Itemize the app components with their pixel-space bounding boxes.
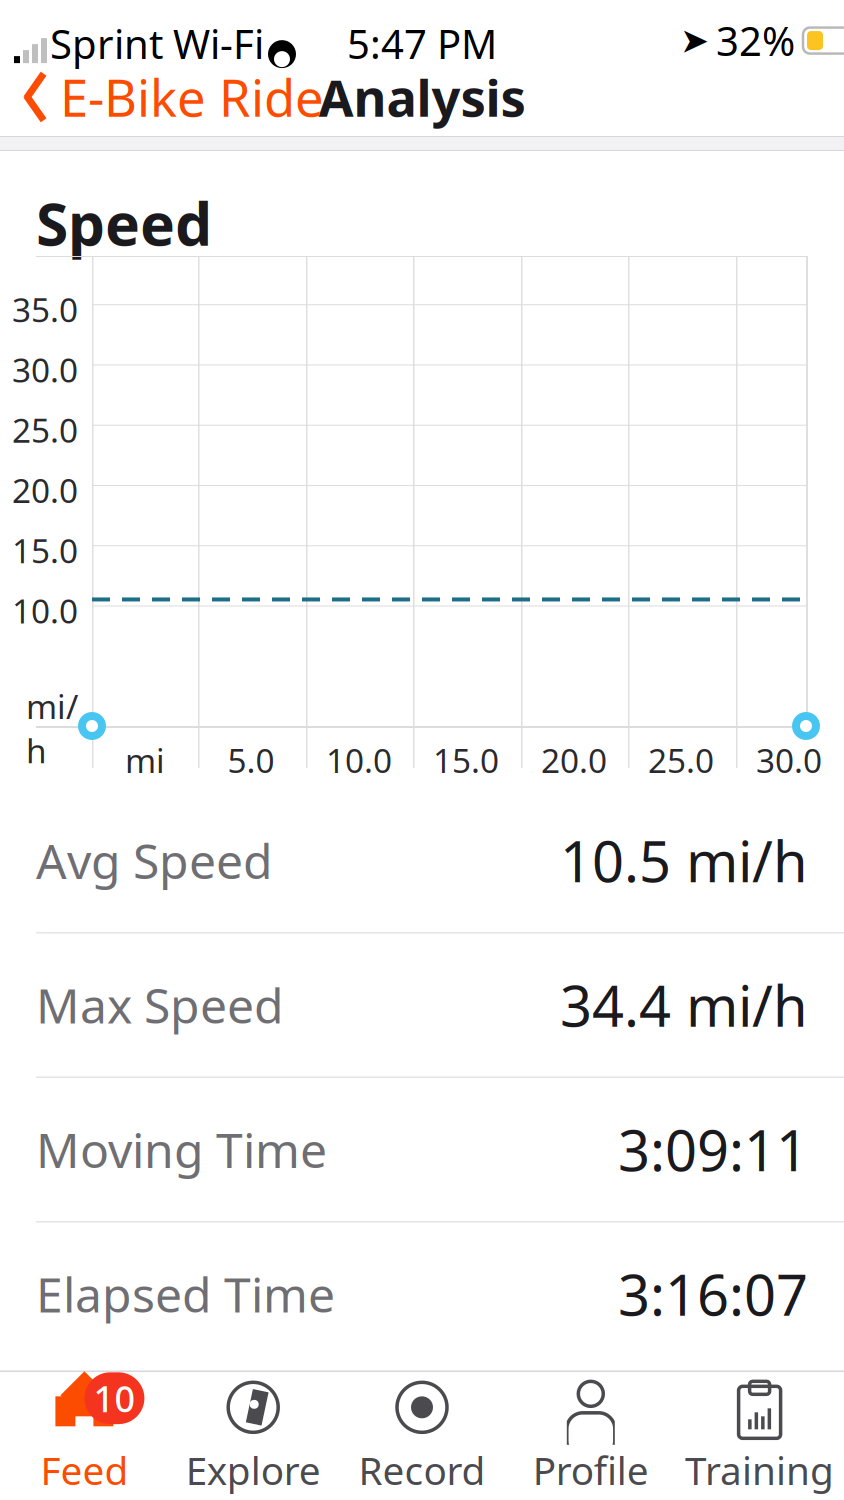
staticText: Elapsed Time	[36, 1262, 335, 1326]
staticText: 10.5 mi/h	[560, 823, 808, 898]
staticText: 10	[93, 1374, 135, 1422]
staticText: Avg Speed	[36, 829, 273, 892]
staticText: ➤	[680, 21, 709, 60]
staticText: E-Bike Ride	[60, 63, 324, 131]
button[interactable]: 10	[0, 1366, 169, 1500]
staticText: 25.0	[648, 738, 714, 782]
staticText: Analysis	[318, 63, 525, 131]
staticText: 15.0	[12, 528, 78, 572]
button[interactable]: E-Bike Ride	[0, 57, 324, 137]
staticText: 20.0	[541, 738, 607, 782]
staticText: mi	[125, 738, 165, 782]
staticText: 3:09:11	[618, 1112, 808, 1187]
staticText: 35.0	[12, 287, 78, 331]
staticText: Profile	[533, 1444, 649, 1496]
staticText: 10.0	[326, 738, 392, 782]
button[interactable]: Moving Time	[0, 1076, 844, 1221]
staticText: Record	[358, 1444, 485, 1496]
staticText: Speed	[36, 184, 212, 262]
button[interactable]: Record	[338, 1366, 506, 1500]
staticText: 5:47 PM	[347, 17, 497, 70]
staticText: mi/h	[26, 684, 78, 772]
staticText: 20.0	[12, 468, 78, 512]
staticText: Sprint Wi-Fi	[50, 17, 264, 70]
staticText: 25.0	[12, 408, 78, 452]
button[interactable]: Avg Speed	[0, 789, 844, 932]
staticText: 30.0	[12, 347, 78, 392]
staticText: Training	[685, 1444, 834, 1496]
staticText: 30.0	[756, 738, 822, 782]
staticText: Feed	[40, 1444, 128, 1496]
button[interactable]: Profile	[506, 1366, 675, 1500]
staticText: Max Speed	[36, 973, 284, 1037]
staticText: 3:16:07	[618, 1257, 808, 1331]
staticText: 10.0	[12, 588, 78, 633]
button[interactable]: Training	[675, 1366, 844, 1500]
staticText: 32%	[716, 14, 795, 67]
staticText: Moving Time	[36, 1118, 327, 1181]
staticText: 15.0	[433, 738, 499, 782]
button[interactable]: Explore	[169, 1366, 338, 1500]
staticText: 5.0	[227, 738, 274, 782]
button[interactable]: Max Speed	[0, 932, 844, 1076]
button[interactable]: Elapsed Time	[0, 1221, 844, 1365]
staticText: 34.4 mi/h	[560, 968, 808, 1042]
staticText: Explore	[186, 1444, 321, 1496]
